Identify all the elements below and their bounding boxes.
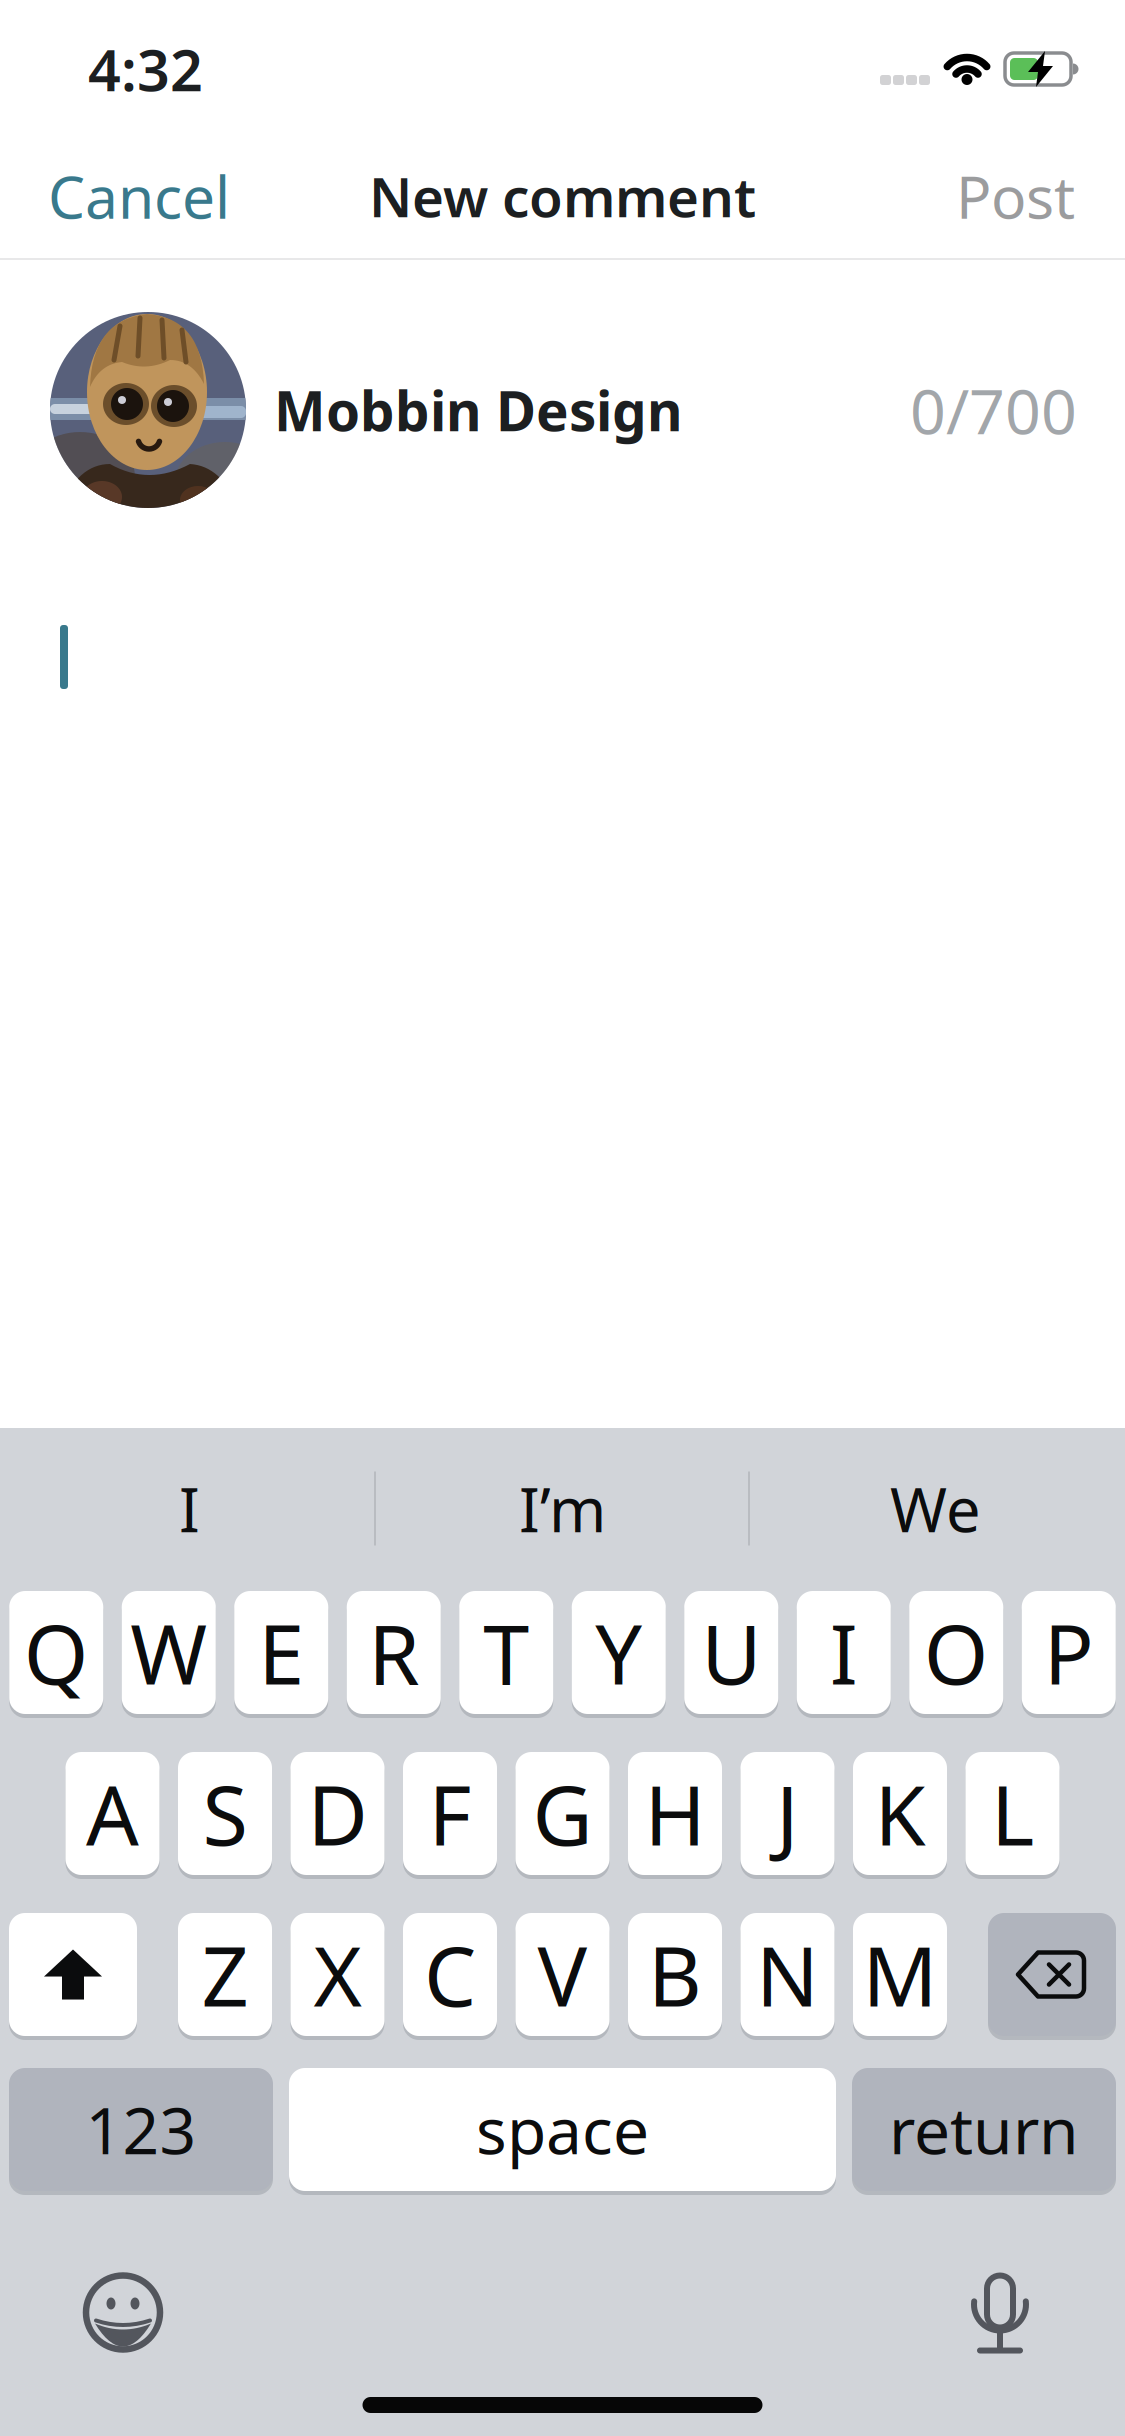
staticText: X [313, 1920, 361, 2029]
button[interactable]: Delete [988, 1911, 1116, 2038]
button[interactable]: Cancel [48, 157, 230, 235]
staticText: C [424, 1920, 476, 2029]
button[interactable]: M [853, 1911, 947, 2038]
button[interactable]: K [853, 1750, 947, 1877]
button[interactable]: Shift [9, 1911, 137, 2038]
staticText: Cancel [48, 157, 230, 235]
staticText: G [532, 1759, 592, 1868]
button[interactable]: We [749, 1428, 1122, 1589]
staticText: F [428, 1759, 471, 1868]
button[interactable]: L [965, 1750, 1059, 1877]
staticText: J [776, 1759, 799, 1868]
button[interactable]: B [628, 1911, 722, 2038]
button[interactable]: C [403, 1911, 497, 2038]
button[interactable]: Post [956, 157, 1075, 235]
button[interactable]: R [347, 1589, 441, 1716]
staticText: B [648, 1920, 702, 2029]
staticText: Post [956, 157, 1075, 235]
staticText: K [874, 1759, 925, 1868]
button[interactable]: W [122, 1589, 216, 1716]
button[interactable]: G [515, 1750, 609, 1877]
button[interactable]: N [740, 1911, 834, 2038]
staticText: T [483, 1598, 529, 1707]
button[interactable]: P [1022, 1589, 1116, 1716]
staticText: D [307, 1759, 367, 1868]
button[interactable]: J [740, 1750, 834, 1877]
staticText: V [537, 1920, 587, 2029]
staticText: space [476, 2087, 649, 2172]
staticText: I’m [519, 1468, 606, 1549]
staticText: I [830, 1598, 858, 1707]
staticText: N [756, 1920, 819, 2029]
staticText: 123 [85, 2087, 196, 2172]
staticText: New comment [369, 160, 756, 232]
button[interactable]: S [178, 1750, 272, 1877]
staticText: We [890, 1468, 981, 1549]
staticText: E [258, 1598, 304, 1707]
staticText: Z [201, 1920, 248, 2029]
button[interactable]: return [852, 2066, 1116, 2193]
staticText: S [202, 1759, 247, 1868]
button[interactable]: V [515, 1911, 609, 2038]
button[interactable]: Q [9, 1589, 103, 1716]
staticText: A [86, 1759, 139, 1868]
staticText: O [924, 1598, 989, 1707]
button[interactable]: D [290, 1750, 384, 1877]
button[interactable]: Emoji [82, 2272, 166, 2356]
staticText: Y [595, 1598, 642, 1707]
staticText: 0/700 [910, 368, 1077, 452]
button[interactable]: X [290, 1911, 384, 2038]
button[interactable]: I [3, 1428, 376, 1589]
button[interactable]: Z [178, 1911, 272, 2038]
button[interactable]: I’m [376, 1428, 749, 1589]
staticText: W [130, 1598, 207, 1707]
button[interactable]: T [459, 1589, 553, 1716]
button[interactable]: Dictation [973, 2272, 1031, 2356]
button[interactable]: space [289, 2066, 836, 2193]
button[interactable]: Numbers [9, 2066, 273, 2193]
staticText: H [644, 1759, 705, 1868]
button[interactable]: O [909, 1589, 1003, 1716]
staticText: R [368, 1598, 419, 1707]
staticText: I [179, 1468, 200, 1549]
button[interactable]: A [65, 1750, 159, 1877]
button[interactable]: Y [572, 1589, 666, 1716]
staticText: Mobbin Design [274, 374, 683, 446]
button[interactable]: U [684, 1589, 778, 1716]
staticText: P [1044, 1598, 1094, 1707]
staticText: 4:32 [88, 31, 203, 107]
staticText: Q [24, 1598, 89, 1707]
staticText: U [701, 1598, 761, 1707]
staticText: M [862, 1920, 937, 2029]
button[interactable]: I [797, 1589, 891, 1716]
button[interactable]: F [403, 1750, 497, 1877]
staticText: return [889, 2087, 1079, 2172]
button[interactable]: E [234, 1589, 328, 1716]
button[interactable]: H [628, 1750, 722, 1877]
staticText: L [991, 1759, 1034, 1868]
